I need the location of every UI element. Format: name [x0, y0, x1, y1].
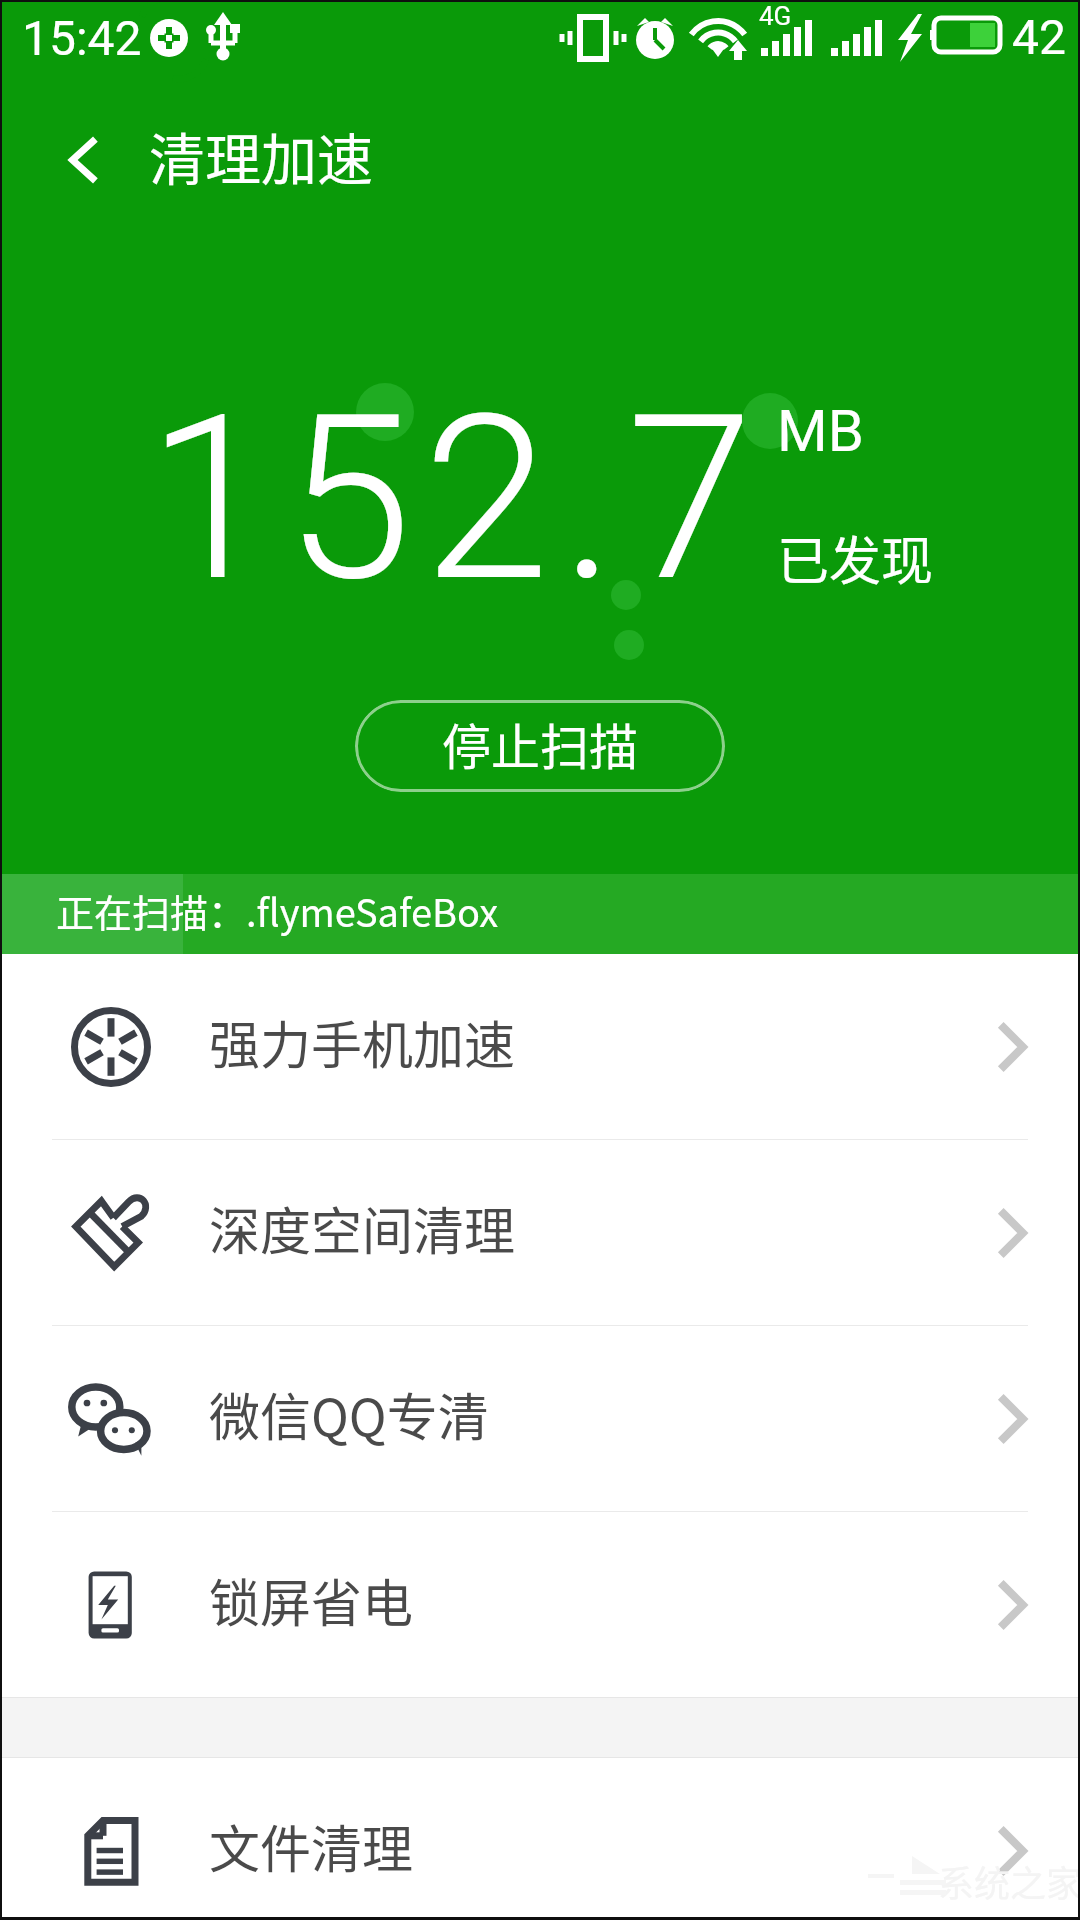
staticText: 强力手机加速: [209, 1005, 516, 1079]
button[interactable]: 强力手机加速: [0, 954, 1080, 1139]
staticText: 清理加速: [149, 115, 373, 196]
staticText: 15:42: [22, 10, 142, 66]
staticText: 文件清理: [209, 1809, 414, 1883]
staticText: 152.7: [147, 365, 765, 632]
staticText: 已发现: [777, 520, 934, 595]
button[interactable]: 深度空间清理: [0, 1140, 1080, 1325]
staticText: 深度空间清理: [209, 1191, 516, 1265]
staticText: 正在扫描：.flymeSafeBox: [56, 883, 499, 938]
staticText: 系统之家: [938, 1855, 1080, 1907]
staticText: MB: [777, 397, 864, 465]
staticText: 锁屏省电: [209, 1563, 414, 1637]
staticText: 停止扫描: [442, 708, 639, 779]
staticText: 微信QQ专清: [209, 1377, 489, 1451]
button[interactable]: 锁屏省电: [0, 1512, 1080, 1697]
button[interactable]: 返回: [30, 105, 140, 215]
button[interactable]: 微信QQ专清: [0, 1326, 1080, 1511]
staticText: 4G: [759, 1, 792, 31]
staticText: 42: [1012, 9, 1066, 65]
button[interactable]: 文件清理: [0, 1758, 1080, 1920]
button[interactable]: 停止扫描: [355, 700, 725, 792]
